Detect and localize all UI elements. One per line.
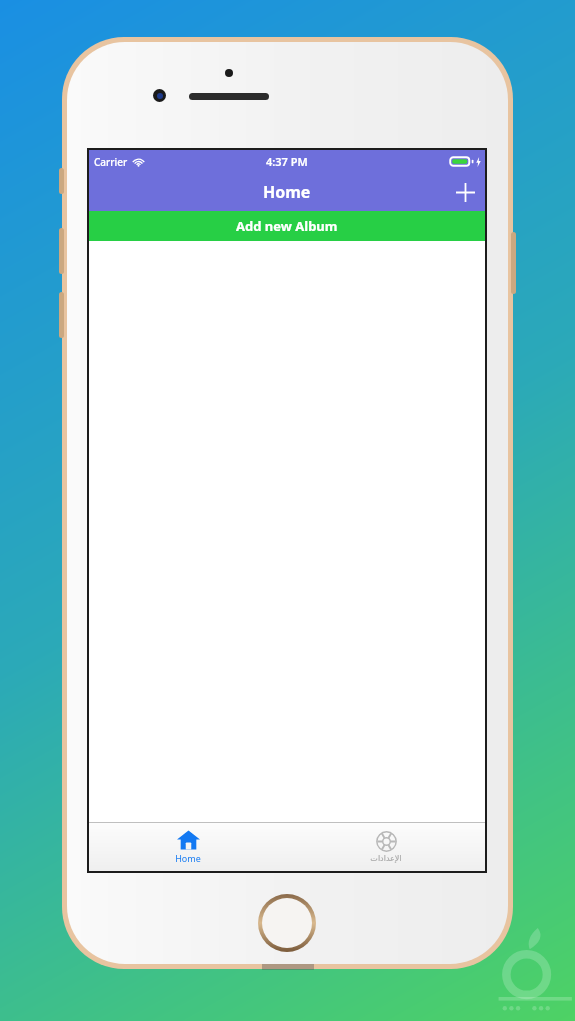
button[interactable]: الإعدادات [287, 823, 485, 871]
staticText: Carrier [94, 155, 128, 169]
staticText: Home [263, 181, 311, 203]
button[interactable]: Add new Album [89, 211, 485, 241]
staticText: Home [175, 852, 201, 864]
staticText: Add new Album [236, 217, 338, 235]
button[interactable]: Add [445, 173, 485, 211]
button[interactable]: Home [89, 823, 287, 871]
staticText: الإعدادات [370, 854, 402, 863]
staticText: 4:37 PM [266, 154, 308, 169]
button[interactable]: Home button [258, 894, 316, 952]
